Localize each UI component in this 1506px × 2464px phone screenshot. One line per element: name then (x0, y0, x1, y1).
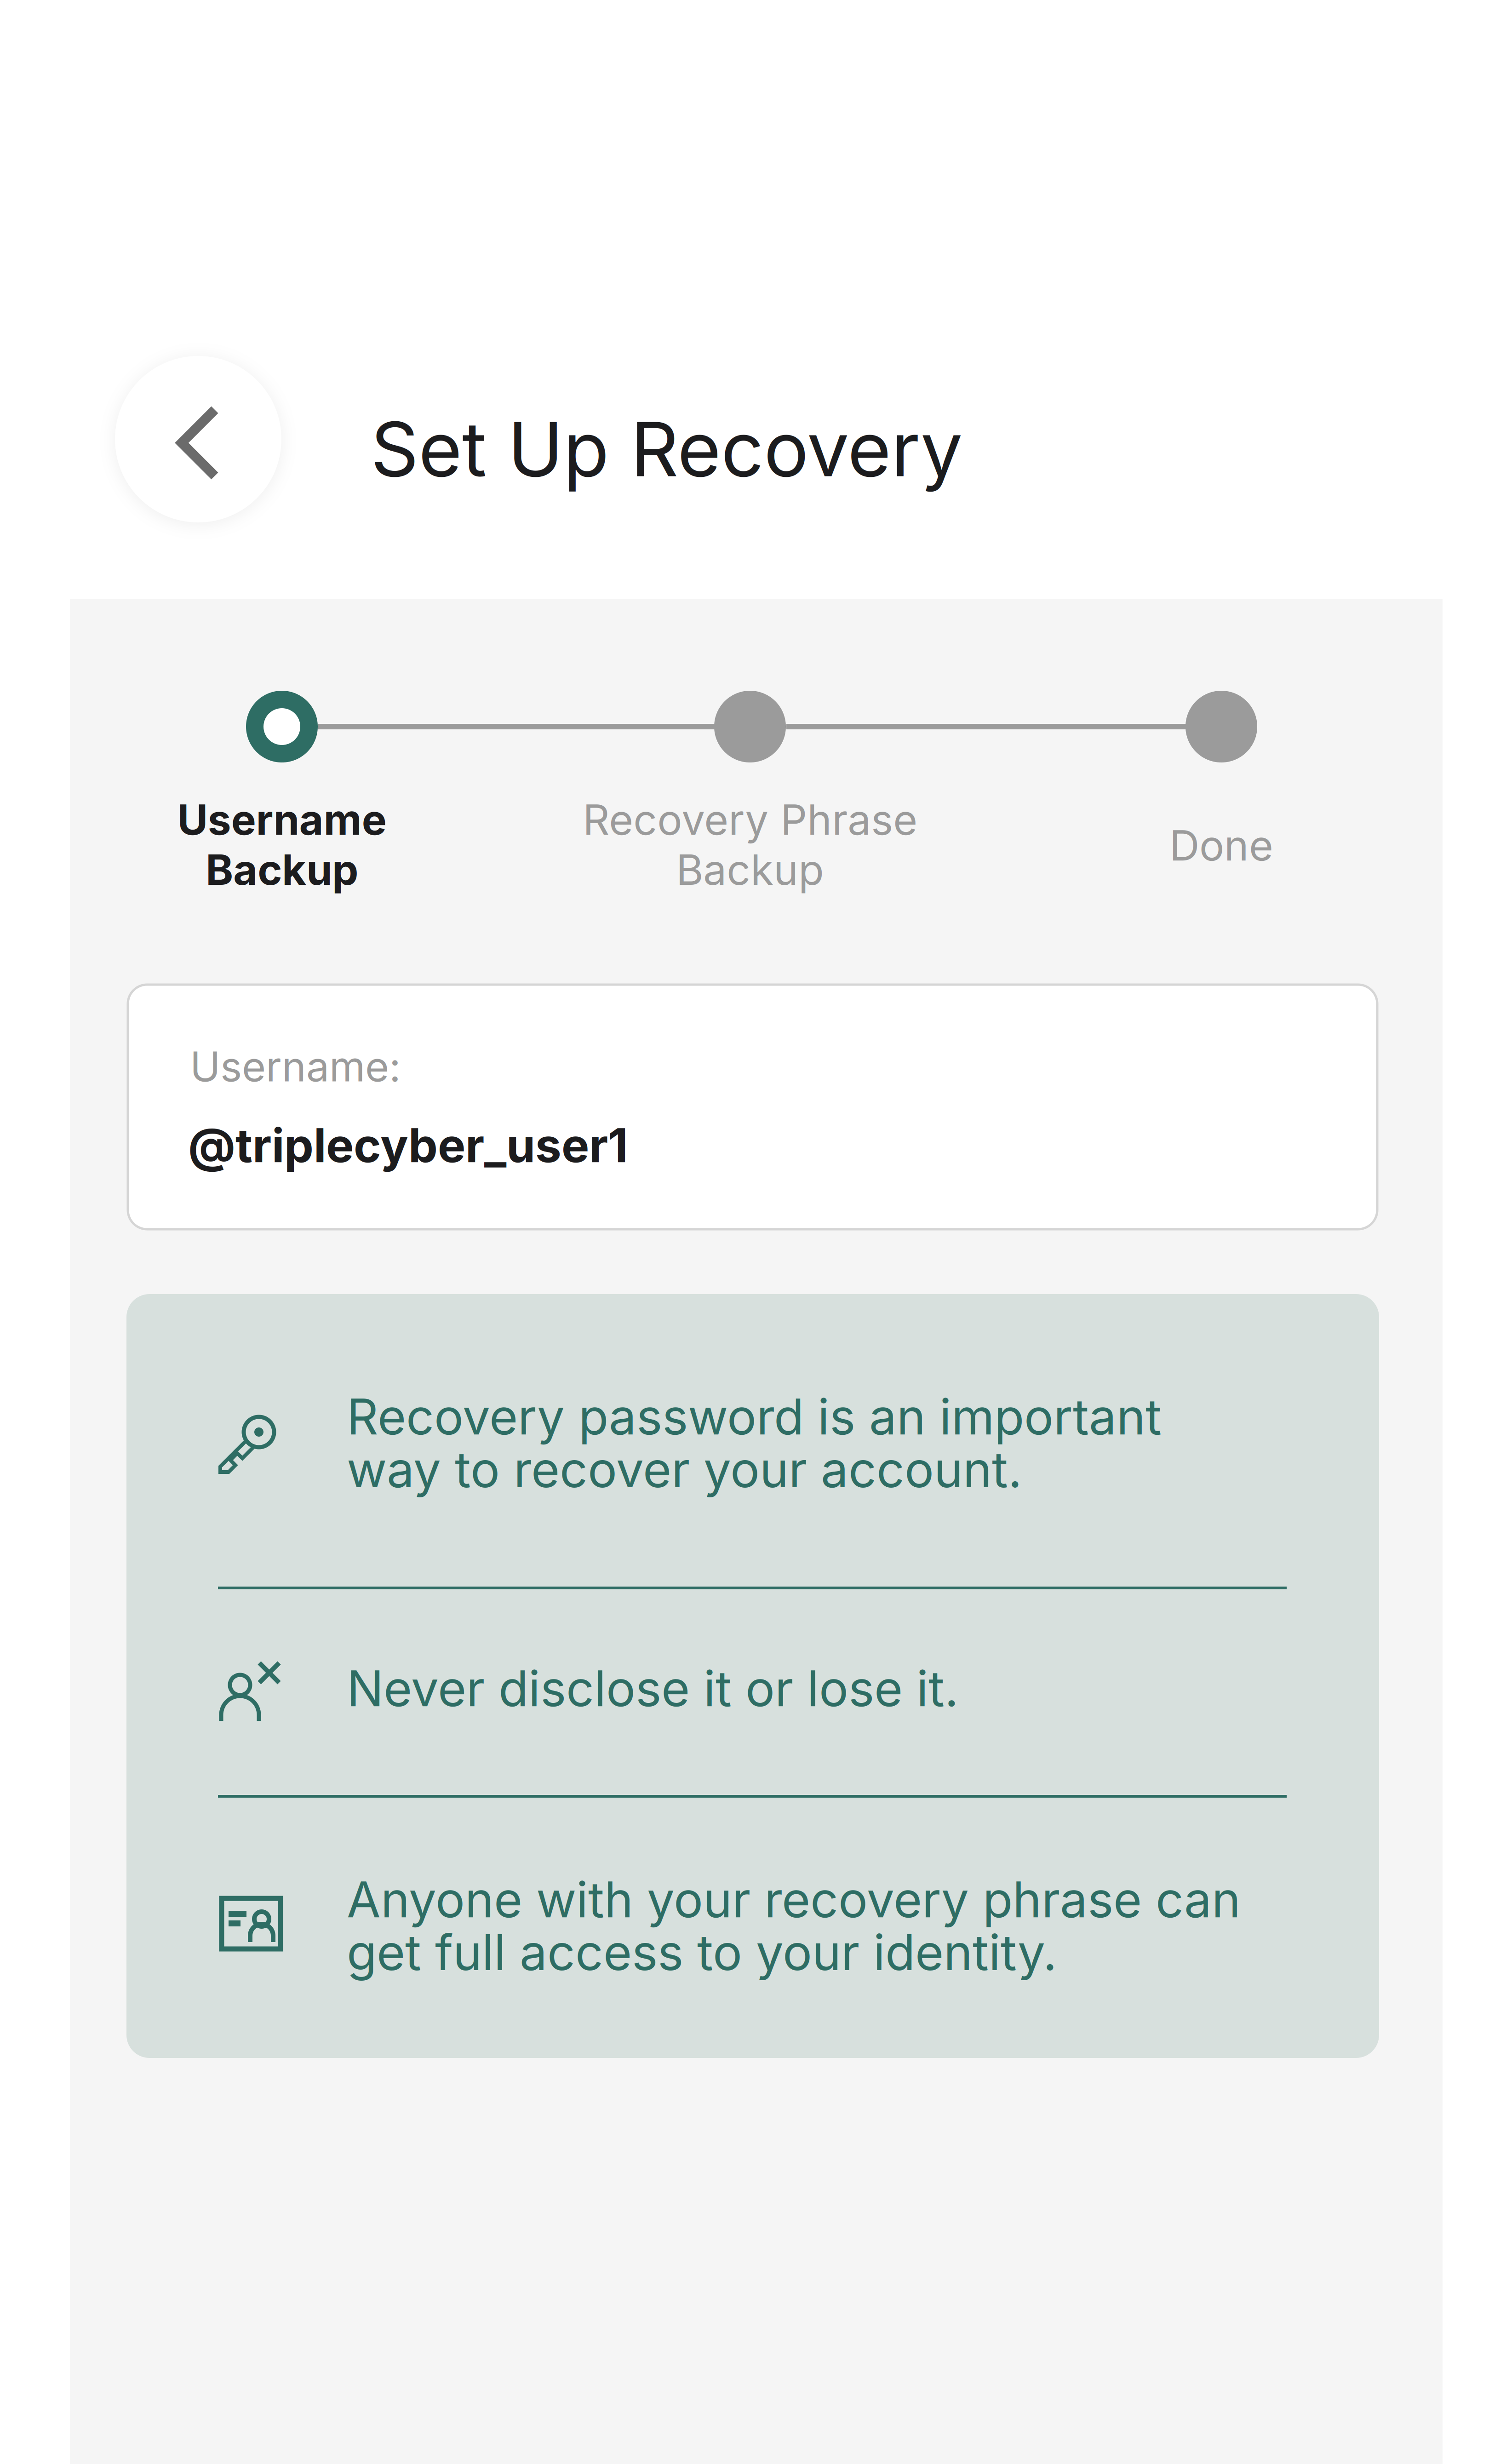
staticText: Recovery Phrase Backup (583, 795, 917, 895)
staticText: Done (1169, 820, 1273, 870)
staticText: Anyone with your recovery phrase can get… (347, 1873, 1241, 1979)
staticText: Username Backup (177, 795, 387, 895)
staticText: Username: (190, 1042, 401, 1091)
button[interactable]: Back (115, 356, 281, 522)
staticText: Set Up Recovery (371, 404, 962, 494)
staticText: @triplecyber_user1 (188, 1117, 628, 1173)
staticText: Never disclose it or lose it. (347, 1662, 959, 1715)
staticText: Recovery password is an important way to… (347, 1390, 1162, 1496)
